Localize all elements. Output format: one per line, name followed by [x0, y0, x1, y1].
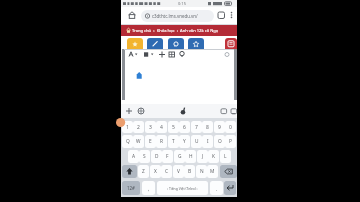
- button[interactable]: X: [150, 165, 161, 178]
- staticText: ‹ Tiếng Việt (Telex) ›: [167, 186, 198, 191]
- button[interactable]: c3dthtc.lms.vnedu.vn/: [141, 10, 214, 22]
- button[interactable]: O: [214, 135, 225, 148]
- button[interactable]: 3: [145, 121, 156, 133]
- staticText: C: [165, 168, 169, 175]
- button[interactable]: C: [161, 165, 172, 178]
- button[interactable]: S: [139, 150, 150, 163]
- button[interactable]: .: [210, 181, 223, 195]
- button[interactable]: W: [133, 135, 144, 148]
- button[interactable]: [225, 38, 237, 50]
- button[interactable]: I: [202, 135, 213, 148]
- button[interactable]: [217, 10, 226, 20]
- staticText: 2: [137, 124, 140, 131]
- button[interactable]: Y: [179, 135, 190, 148]
- staticText: R: [160, 138, 163, 145]
- button[interactable]: B: [184, 165, 195, 178]
- button[interactable]: V: [173, 165, 184, 178]
- button[interactable]: [127, 38, 143, 50]
- staticText: 4: [160, 124, 163, 131]
- button[interactable]: G: [174, 150, 185, 163]
- staticText: D: [155, 153, 159, 160]
- button[interactable]: [122, 165, 137, 178]
- button[interactable]: [127, 10, 137, 20]
- button[interactable]: F: [162, 150, 173, 163]
- staticText: .: [216, 185, 218, 192]
- staticText: 5: [172, 124, 175, 131]
- staticText: A: [132, 153, 136, 160]
- staticText: 6: [183, 124, 186, 131]
- button[interactable]: 1: [122, 121, 133, 133]
- staticText: E: [149, 138, 152, 145]
- button[interactable]: Z: [138, 165, 149, 178]
- staticText: 3: [149, 124, 152, 131]
- staticText: 9: [218, 124, 221, 131]
- staticText: 7: [195, 124, 198, 131]
- button[interactable]: [147, 38, 163, 50]
- button[interactable]: 12#: [122, 181, 140, 195]
- staticText: B: [188, 168, 192, 175]
- button[interactable]: M: [207, 165, 218, 178]
- button[interactable]: 9: [214, 121, 225, 133]
- staticText: ,: [148, 185, 150, 192]
- staticText: 12#: [127, 185, 135, 191]
- staticText: X: [154, 168, 157, 175]
- staticText: V: [177, 168, 180, 175]
- button[interactable]: H: [185, 150, 196, 163]
- staticText: M: [210, 168, 215, 175]
- staticText: Trang chủ › Khóa học › Anh văn 12k cô Ng…: [132, 28, 219, 34]
- button[interactable]: P: [225, 135, 236, 148]
- staticText: 0: [229, 124, 232, 131]
- button[interactable]: R: [156, 135, 167, 148]
- staticText: P: [229, 138, 232, 145]
- button[interactable]: E: [145, 135, 156, 148]
- button[interactable]: 7: [191, 121, 202, 133]
- staticText: 8: [206, 124, 209, 131]
- button[interactable]: L: [220, 150, 231, 163]
- staticText: 1: [126, 124, 129, 131]
- button[interactable]: 5: [168, 121, 179, 133]
- button[interactable]: [168, 38, 184, 50]
- staticText: J: [202, 153, 204, 160]
- button[interactable]: 2: [133, 121, 144, 133]
- button[interactable]: J: [197, 150, 208, 163]
- staticText: O: [218, 138, 222, 145]
- staticText: N: [200, 168, 204, 175]
- staticText: K: [212, 153, 215, 160]
- staticText: T: [172, 138, 175, 145]
- staticText: G: [178, 153, 182, 160]
- staticText: F: [166, 153, 169, 160]
- button[interactable]: [228, 10, 235, 20]
- button[interactable]: 4: [156, 121, 167, 133]
- staticText: c3dthtc.lms.vnedu.vn/: [152, 13, 198, 19]
- staticText: U: [195, 138, 199, 145]
- button[interactable]: N: [196, 165, 207, 178]
- button[interactable]: 0: [225, 121, 236, 133]
- staticText: H: [189, 153, 193, 160]
- staticText: Q: [126, 138, 130, 145]
- staticText: I: [207, 138, 209, 145]
- button[interactable]: [188, 38, 204, 50]
- staticText: W: [136, 138, 141, 145]
- button[interactable]: ‹ Tiếng Việt (Telex) ›: [157, 181, 208, 195]
- staticText: Z: [142, 168, 145, 175]
- button[interactable]: ,: [142, 181, 155, 195]
- button[interactable]: [220, 165, 237, 178]
- button[interactable]: K: [208, 150, 219, 163]
- button[interactable]: A: [128, 150, 139, 163]
- staticText: L: [224, 153, 227, 160]
- button[interactable]: T: [168, 135, 179, 148]
- staticText: S: [143, 153, 146, 160]
- button[interactable]: [224, 181, 236, 195]
- button[interactable]: 6: [179, 121, 190, 133]
- staticText: 0:15: [178, 1, 186, 6]
- button[interactable]: U: [191, 135, 202, 148]
- staticText: Y: [183, 138, 186, 145]
- button[interactable]: 8: [202, 121, 213, 133]
- button[interactable]: D: [151, 150, 162, 163]
- button[interactable]: Q: [122, 135, 133, 148]
